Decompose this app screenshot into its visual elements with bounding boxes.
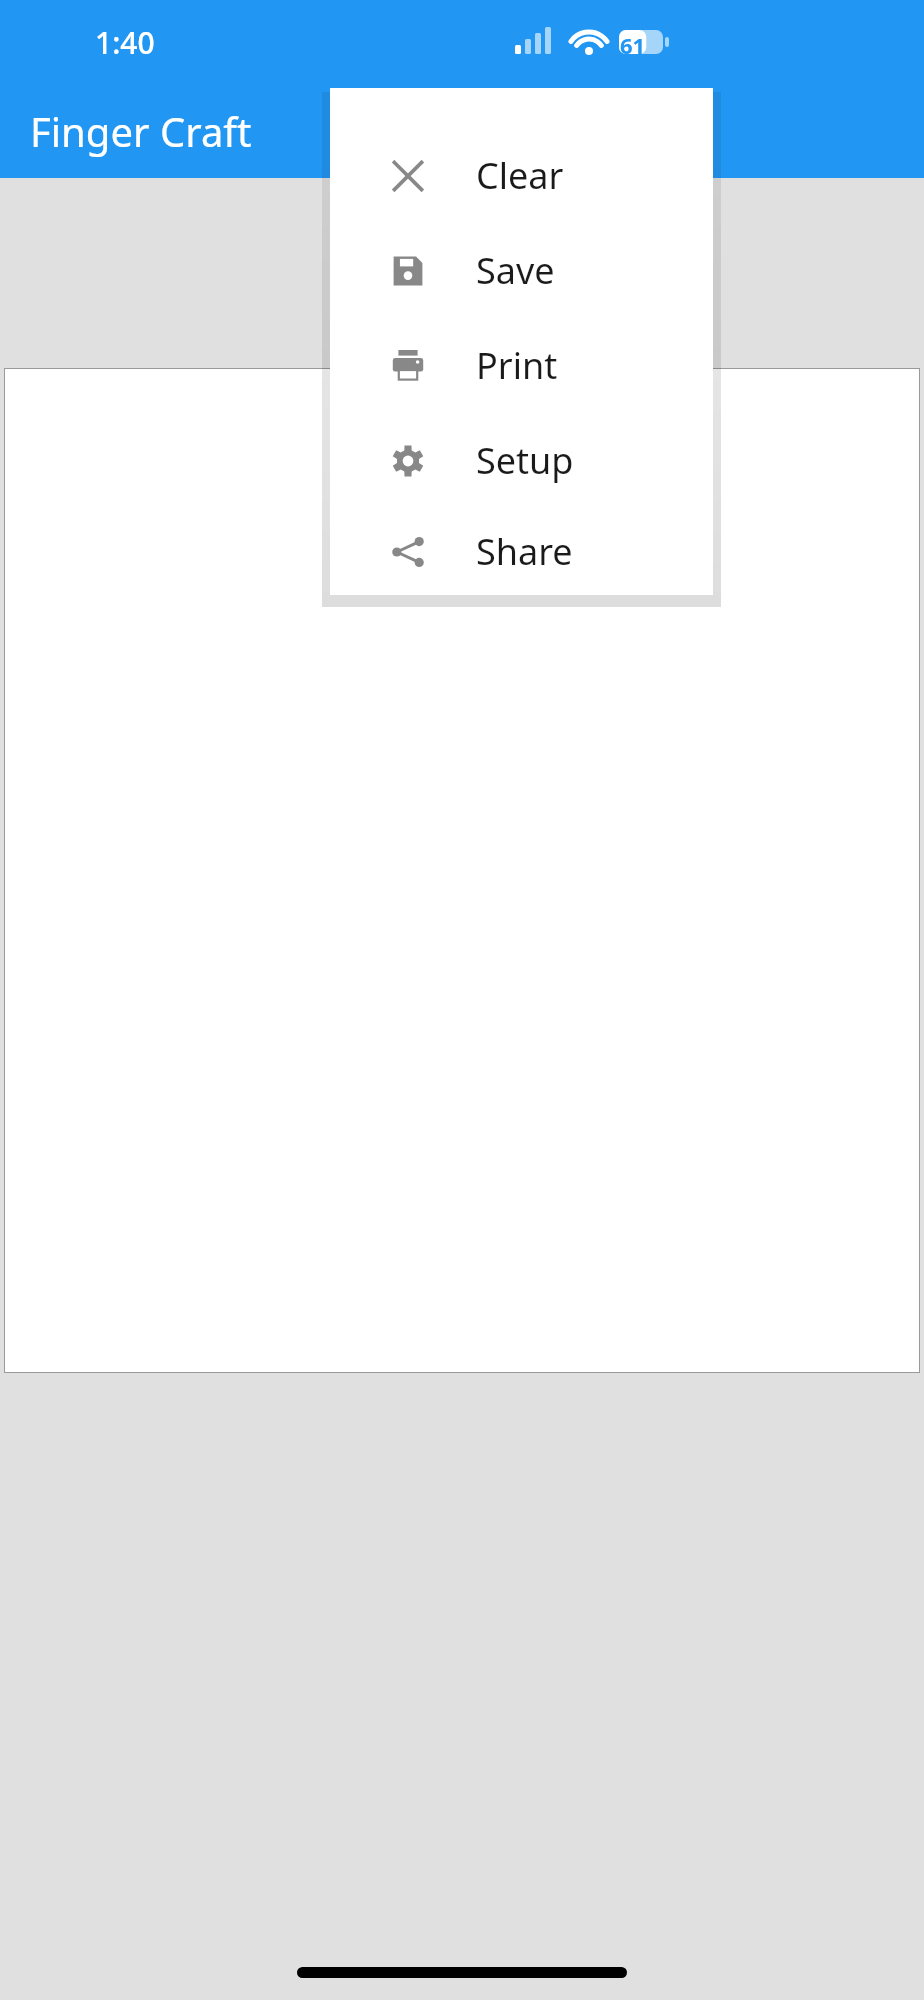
- staticText: Setup: [476, 436, 574, 485]
- staticText: Print: [476, 341, 558, 390]
- staticText: 61: [620, 30, 646, 60]
- staticText: Clear: [476, 151, 564, 200]
- button[interactable]: Print: [330, 318, 713, 413]
- button[interactable]: Setup: [330, 413, 713, 508]
- button[interactable]: Clear: [330, 128, 713, 223]
- button[interactable]: Share: [330, 508, 713, 595]
- staticText: Save: [476, 246, 555, 295]
- staticText: Share: [476, 527, 573, 576]
- staticText: Finger Craft: [30, 104, 252, 158]
- staticText: 1:40: [95, 22, 155, 63]
- button[interactable]: Save: [330, 223, 713, 318]
